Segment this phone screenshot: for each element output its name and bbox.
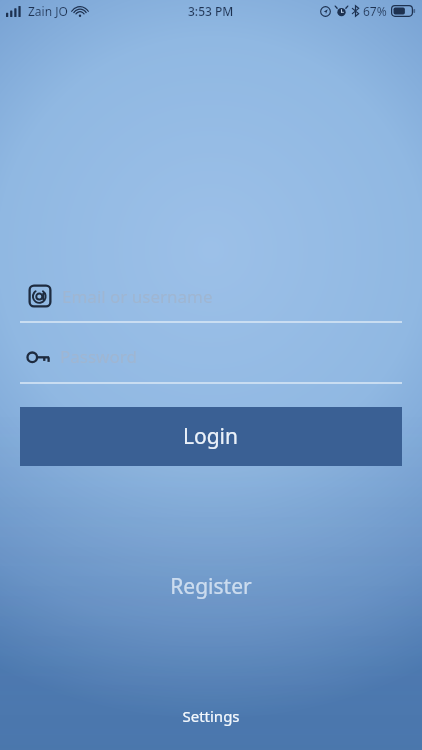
other: Email or username <box>28 284 52 308</box>
staticText: Login <box>183 422 239 451</box>
button[interactable]: Register <box>0 566 422 606</box>
staticText: Password <box>60 345 137 368</box>
button[interactable]: Email or username <box>0 284 422 324</box>
staticText: Register <box>170 572 252 601</box>
staticText: Settings <box>182 706 240 726</box>
button[interactable]: Login <box>20 407 402 466</box>
staticText: Email or username <box>62 285 213 308</box>
button[interactable]: Settings <box>0 700 422 732</box>
staticText: 3:53 PM <box>188 3 234 19</box>
staticText: 67% <box>363 3 387 19</box>
button[interactable]: Password <box>0 345 422 383</box>
staticText: Zain JO <box>28 3 68 19</box>
other: Password <box>27 349 51 365</box>
